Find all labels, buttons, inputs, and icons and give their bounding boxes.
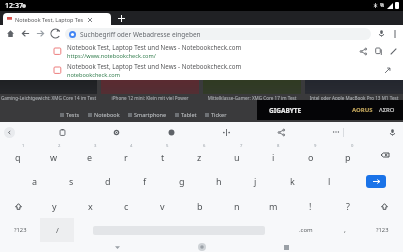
- button[interactable]: 6: [181, 142, 218, 168]
- button[interactable]: 4: [108, 142, 144, 168]
- button[interactable]: Reload: [48, 26, 63, 41]
- button[interactable]: m: [255, 194, 292, 218]
- button[interactable]: 3: [72, 142, 108, 168]
- button[interactable]: Translate: [219, 125, 233, 139]
- button[interactable]: Enter: [366, 175, 386, 188]
- button[interactable]: Notebook Test, Laptop Test und News - No…: [0, 42, 403, 61]
- button[interactable]: Tablet: [175, 111, 197, 118]
- button[interactable]: Recent apps: [280, 242, 292, 252]
- staticText: t: [161, 151, 165, 163]
- button[interactable]: Home: [3, 26, 18, 41]
- button[interactable]: Share: [356, 44, 371, 59]
- staticText: iPhone 12 mini: Klein mit viel Power: [101, 95, 199, 101]
- button[interactable]: Shift: [0, 194, 36, 218]
- staticText: %: [380, 2, 385, 9]
- staticText: q: [15, 151, 21, 163]
- button[interactable]: d: [89, 168, 126, 194]
- button[interactable]: 1: [0, 142, 36, 168]
- button[interactable]: Share: [274, 125, 288, 139]
- button[interactable]: Mittelklasse-Gamer: XMG Core 17 im Test: [203, 80, 301, 101]
- button[interactable]: 2: [36, 142, 72, 168]
- button[interactable]: Voice input: [385, 125, 399, 139]
- button[interactable]: y: [36, 194, 72, 218]
- button[interactable]: Stickers: [164, 125, 178, 139]
- button[interactable]: f: [126, 168, 163, 194]
- button[interactable]: Fill suggestion: [380, 63, 395, 78]
- button[interactable]: Shift: [366, 194, 403, 218]
- staticText: Ticker: [211, 111, 227, 118]
- button[interactable]: Close tab: [86, 16, 93, 23]
- staticText: ?: [346, 200, 350, 212]
- button[interactable]: Edit: [386, 44, 401, 59]
- button[interactable]: c: [108, 194, 144, 218]
- button[interactable]: New tab: [115, 12, 127, 24]
- button[interactable]: b: [181, 194, 218, 218]
- staticText: 6: [203, 143, 206, 149]
- button[interactable]: /: [40, 218, 74, 242]
- button[interactable]: Voice search: [375, 27, 388, 40]
- button[interactable]: Ticker: [205, 111, 227, 118]
- staticText: Gaming-Leichtgewicht: XMG Core 14 im Tes…: [0, 95, 97, 101]
- button[interactable]: Smartphone: [128, 111, 167, 118]
- button[interactable]: Settings: [109, 125, 123, 139]
- button[interactable]: Gaming-Leichtgewicht: XMG Core 14 im Tes…: [0, 80, 97, 101]
- staticText: z: [197, 151, 202, 163]
- button[interactable]: h: [200, 168, 237, 194]
- button[interactable]: Tests: [60, 111, 80, 118]
- button[interactable]: !: [292, 194, 329, 218]
- staticText: Notebook Test, Laptop Test und News - No…: [67, 62, 242, 70]
- staticText: f: [143, 175, 147, 187]
- button[interactable]: GIGABYTE: [257, 100, 403, 120]
- staticText: y: [52, 200, 57, 212]
- staticText: notebookcheck.com: [67, 71, 120, 79]
- button[interactable]: Back: [18, 26, 33, 41]
- button[interactable]: ?123: [0, 218, 40, 242]
- button[interactable]: ?123: [362, 218, 403, 242]
- staticText: 0: [351, 143, 354, 149]
- button[interactable]: Forward: [33, 26, 48, 41]
- button[interactable]: x: [72, 194, 108, 218]
- button[interactable]: Suchbegriff oder Webadresse eingeben: [65, 28, 371, 40]
- button[interactable]: j: [237, 168, 274, 194]
- button[interactable]: Notebook Test, Laptop Test und News - No…: [0, 61, 403, 80]
- button[interactable]: .com: [284, 218, 328, 242]
- button[interactable]: Home: [196, 242, 208, 252]
- button[interactable]: ,: [328, 218, 362, 242]
- staticText: s: [69, 175, 74, 187]
- button[interactable]: ?: [329, 194, 366, 218]
- staticText: https://www.notebookcheck.com/: [67, 52, 156, 60]
- button[interactable]: 9: [292, 142, 329, 168]
- button[interactable]: 0: [329, 142, 366, 168]
- staticText: l: [328, 175, 331, 187]
- button[interactable]: Copy: [371, 44, 386, 59]
- staticText: u: [234, 151, 240, 163]
- button[interactable]: More: [329, 125, 343, 139]
- staticText: Notebook Test, Laptop Tes: [15, 16, 84, 23]
- button[interactable]: n: [218, 194, 255, 218]
- button[interactable]: v: [144, 194, 181, 218]
- staticText: 4: [130, 143, 133, 149]
- button[interactable]: Back: [111, 242, 123, 252]
- button[interactable]: iPhone 12 mini: Klein mit viel Power: [101, 80, 199, 101]
- button[interactable]: Notebook: [88, 111, 120, 118]
- button[interactable]: Backspace: [366, 142, 403, 168]
- button[interactable]: 8: [255, 142, 292, 168]
- staticText: Tablet: [181, 111, 197, 118]
- button[interactable]: Notebook Test, Laptop Tes: [3, 13, 111, 25]
- button[interactable]: g: [163, 168, 200, 194]
- button[interactable]: 5: [144, 142, 181, 168]
- button[interactable]: l: [311, 168, 348, 194]
- button[interactable]: 7: [218, 142, 255, 168]
- button[interactable]: k: [274, 168, 311, 194]
- staticText: 3: [94, 143, 97, 149]
- button[interactable]: s: [53, 168, 89, 194]
- button[interactable]: More options: [388, 27, 401, 40]
- button[interactable]: Expand toolbar: [4, 127, 15, 138]
- button[interactable]: Intel oder Apple MacBook Pro 13 M1 Test: [305, 80, 403, 101]
- button[interactable]: Clipboard: [55, 125, 69, 139]
- staticText: ?123: [376, 226, 389, 234]
- button[interactable]: a: [17, 168, 53, 194]
- staticText: 1: [22, 143, 25, 149]
- staticText: AORUS: [352, 106, 373, 114]
